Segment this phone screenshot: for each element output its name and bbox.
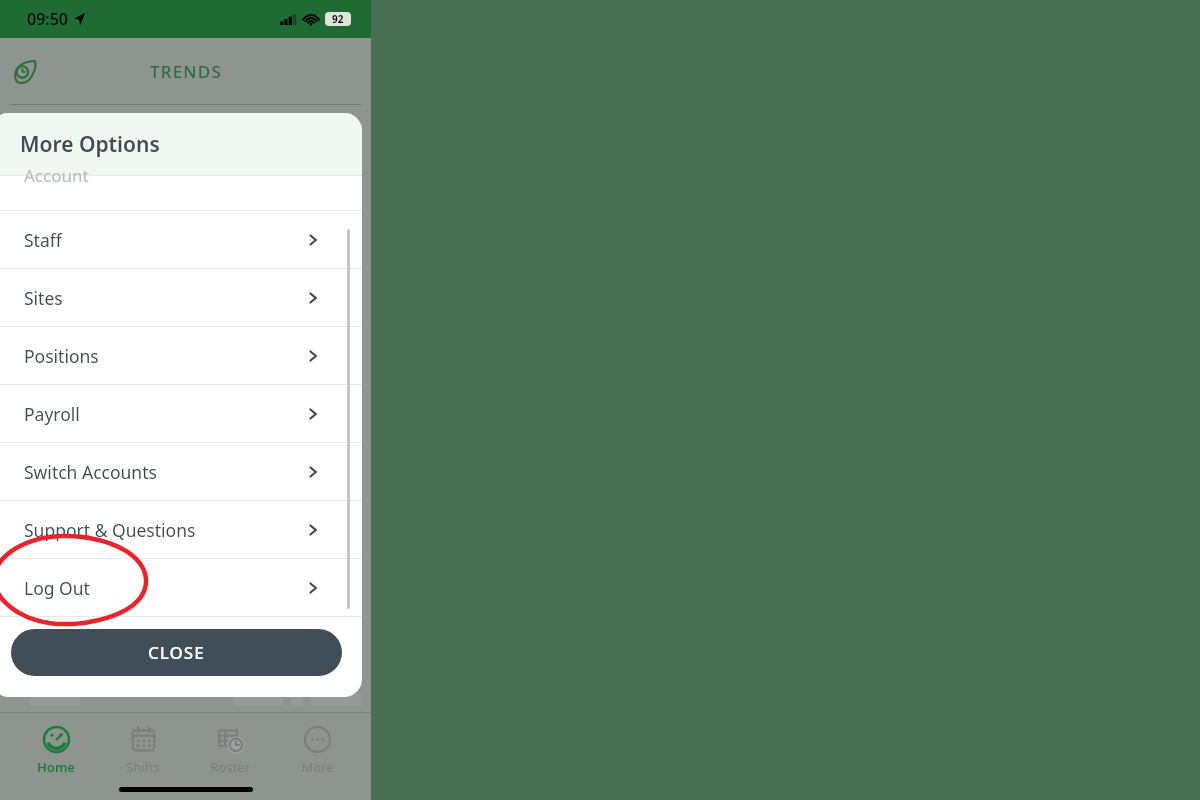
staticText: Payroll [24,402,80,426]
staticText: More [301,758,334,776]
staticText: 09:50 [27,8,68,30]
button[interactable]: Sites [0,269,362,326]
staticText: Account [24,164,89,187]
staticText: Switch Accounts [24,460,157,484]
button[interactable]: More [287,724,348,778]
staticText: Support & Questions [24,518,196,542]
button[interactable]: Roster [196,724,264,778]
staticText: TRENDS [150,60,222,83]
staticText: Log Out [24,576,90,600]
staticText: Staff [24,228,62,252]
staticText: Sites [24,286,63,310]
button[interactable]: Support & Questions [0,501,362,558]
button[interactable]: Switch Accounts [0,443,362,500]
button[interactable]: Shifts [112,724,174,778]
button[interactable]: Home [23,724,89,778]
staticText: CLOSE [148,641,205,664]
staticText: More Options [20,130,160,159]
staticText: Shifts [126,758,160,776]
staticText: Positions [24,344,99,368]
staticText: Home [37,758,75,776]
staticText: Roster [210,758,250,776]
staticText: 92 [332,12,344,26]
button[interactable]: CLOSE [11,629,342,676]
button[interactable]: Staff [0,211,362,268]
button[interactable]: Positions [0,327,362,384]
button[interactable]: Payroll [0,385,362,442]
button[interactable]: Log Out [0,559,362,616]
